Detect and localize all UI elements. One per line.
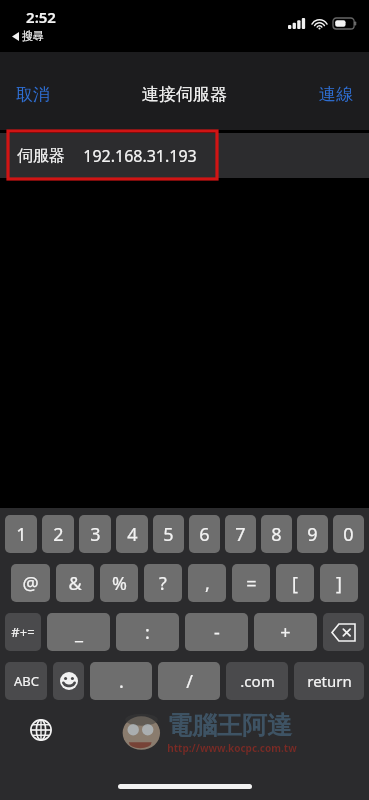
staticText: 3 [90,522,101,547]
button[interactable]: 7 [225,515,256,553]
button[interactable]: 2 [42,515,74,553]
button[interactable]: = [232,564,270,602]
staticText: _ [75,620,83,645]
staticText: [ [292,571,298,596]
staticText: 192.168.31.193 [83,145,197,167]
button[interactable]: ABC [5,662,47,700]
staticText: 連接伺服器 [142,84,227,105]
button[interactable]: #+= [5,613,41,651]
staticText: 5 [163,522,174,547]
staticText: return [307,671,352,691]
button[interactable]: 5 [153,515,184,553]
button[interactable]: Backspace [323,613,364,651]
staticText: 4 [127,522,138,547]
staticText: ? [159,571,167,596]
button[interactable]: 3 [79,515,111,553]
staticText: & [68,571,82,596]
button[interactable]: Change keyboard language [26,715,56,745]
button[interactable]: , [188,564,226,602]
button[interactable]: 9 [297,515,328,553]
button[interactable]: 4 [116,515,148,553]
button[interactable]: + [254,613,317,651]
button[interactable]: 取消 [0,76,66,113]
button[interactable]: . [90,662,152,700]
staticText: 8 [271,522,282,547]
button[interactable]: ? [144,564,182,602]
button[interactable]: [ [276,564,314,602]
staticText: 9 [307,522,318,547]
button[interactable]: _ [47,613,110,651]
button[interactable]: 8 [261,515,292,553]
staticText: % [112,571,127,596]
staticText: ABC [14,672,39,690]
button[interactable]: 伺服器 [0,133,369,178]
staticText: 連線 [319,84,353,105]
staticText: / [186,669,193,694]
staticText: 6 [199,522,210,547]
button[interactable]: : [116,613,179,651]
staticText: , [205,571,210,596]
staticText: 伺服器 [17,146,65,166]
staticText: : [145,620,150,645]
button[interactable]: Emoji [53,662,84,700]
staticText: http://www.kocpc.com.tw [167,741,297,755]
button[interactable]: return [294,662,364,700]
staticText: .com [240,671,275,691]
staticText: 電腦王阿達 [167,710,292,741]
staticText: @ [22,571,39,596]
staticText: . [119,669,124,694]
staticText: 搜尋 [22,29,44,43]
staticText: #+= [11,623,35,641]
staticText: 取消 [16,84,50,105]
button[interactable]: @ [11,564,50,602]
button[interactable]: 0 [333,515,364,553]
button[interactable]: / [158,662,220,700]
button[interactable]: % [100,564,138,602]
staticText: - [214,620,220,645]
button[interactable]: Back to 搜尋 [10,29,46,43]
button[interactable]: 6 [189,515,220,553]
button[interactable]: 連線 [303,76,369,113]
staticText: 1 [16,522,27,547]
staticText: 0 [343,522,354,547]
staticText: + [280,620,291,645]
button[interactable]: & [56,564,94,602]
button[interactable]: ] [320,564,358,602]
staticText: 2 [53,522,64,547]
button[interactable]: 1 [5,515,37,553]
staticText: 2:52 [26,7,56,27]
button[interactable]: .com [226,662,288,700]
staticText: 7 [235,522,246,547]
staticText: = [246,571,257,596]
staticText: ] [336,571,342,596]
button[interactable]: - [185,613,248,651]
